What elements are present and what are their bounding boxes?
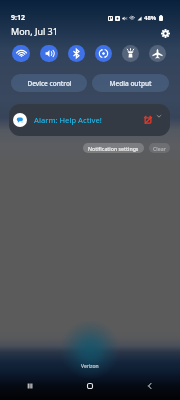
button[interactable]: Device control xyxy=(11,74,87,92)
staticText: Clear xyxy=(153,145,166,152)
staticText: Mon, Jul 31 xyxy=(11,25,58,37)
button[interactable]: Airplane mode xyxy=(149,45,166,62)
button[interactable]: Flashlight xyxy=(122,45,139,62)
button[interactable]: Expand xyxy=(153,115,164,126)
button[interactable]: Media output xyxy=(92,74,169,92)
staticText: Verizon xyxy=(81,363,99,370)
staticText: Media output xyxy=(109,79,152,88)
staticText: 48% xyxy=(144,14,157,22)
button[interactable]: Auto rotate xyxy=(95,45,112,62)
button[interactable]: Alarm: Help Active! xyxy=(9,104,170,136)
button[interactable]: Clear xyxy=(149,143,170,153)
button[interactable]: Back xyxy=(120,372,180,400)
button[interactable]: Recents xyxy=(0,372,60,400)
button[interactable]: Wi-Fi xyxy=(12,45,30,62)
button[interactable]: Sound xyxy=(40,45,58,62)
staticText: Notification settings xyxy=(88,145,139,152)
staticText: Alarm: Help Active! xyxy=(34,115,102,125)
button[interactable]: Settings xyxy=(158,26,172,40)
staticText: 9:12 xyxy=(11,13,25,23)
button[interactable]: Notification settings xyxy=(83,143,144,153)
staticText: Device control xyxy=(27,79,72,88)
button[interactable]: Bluetooth xyxy=(68,45,85,62)
button[interactable]: Home xyxy=(60,372,120,400)
